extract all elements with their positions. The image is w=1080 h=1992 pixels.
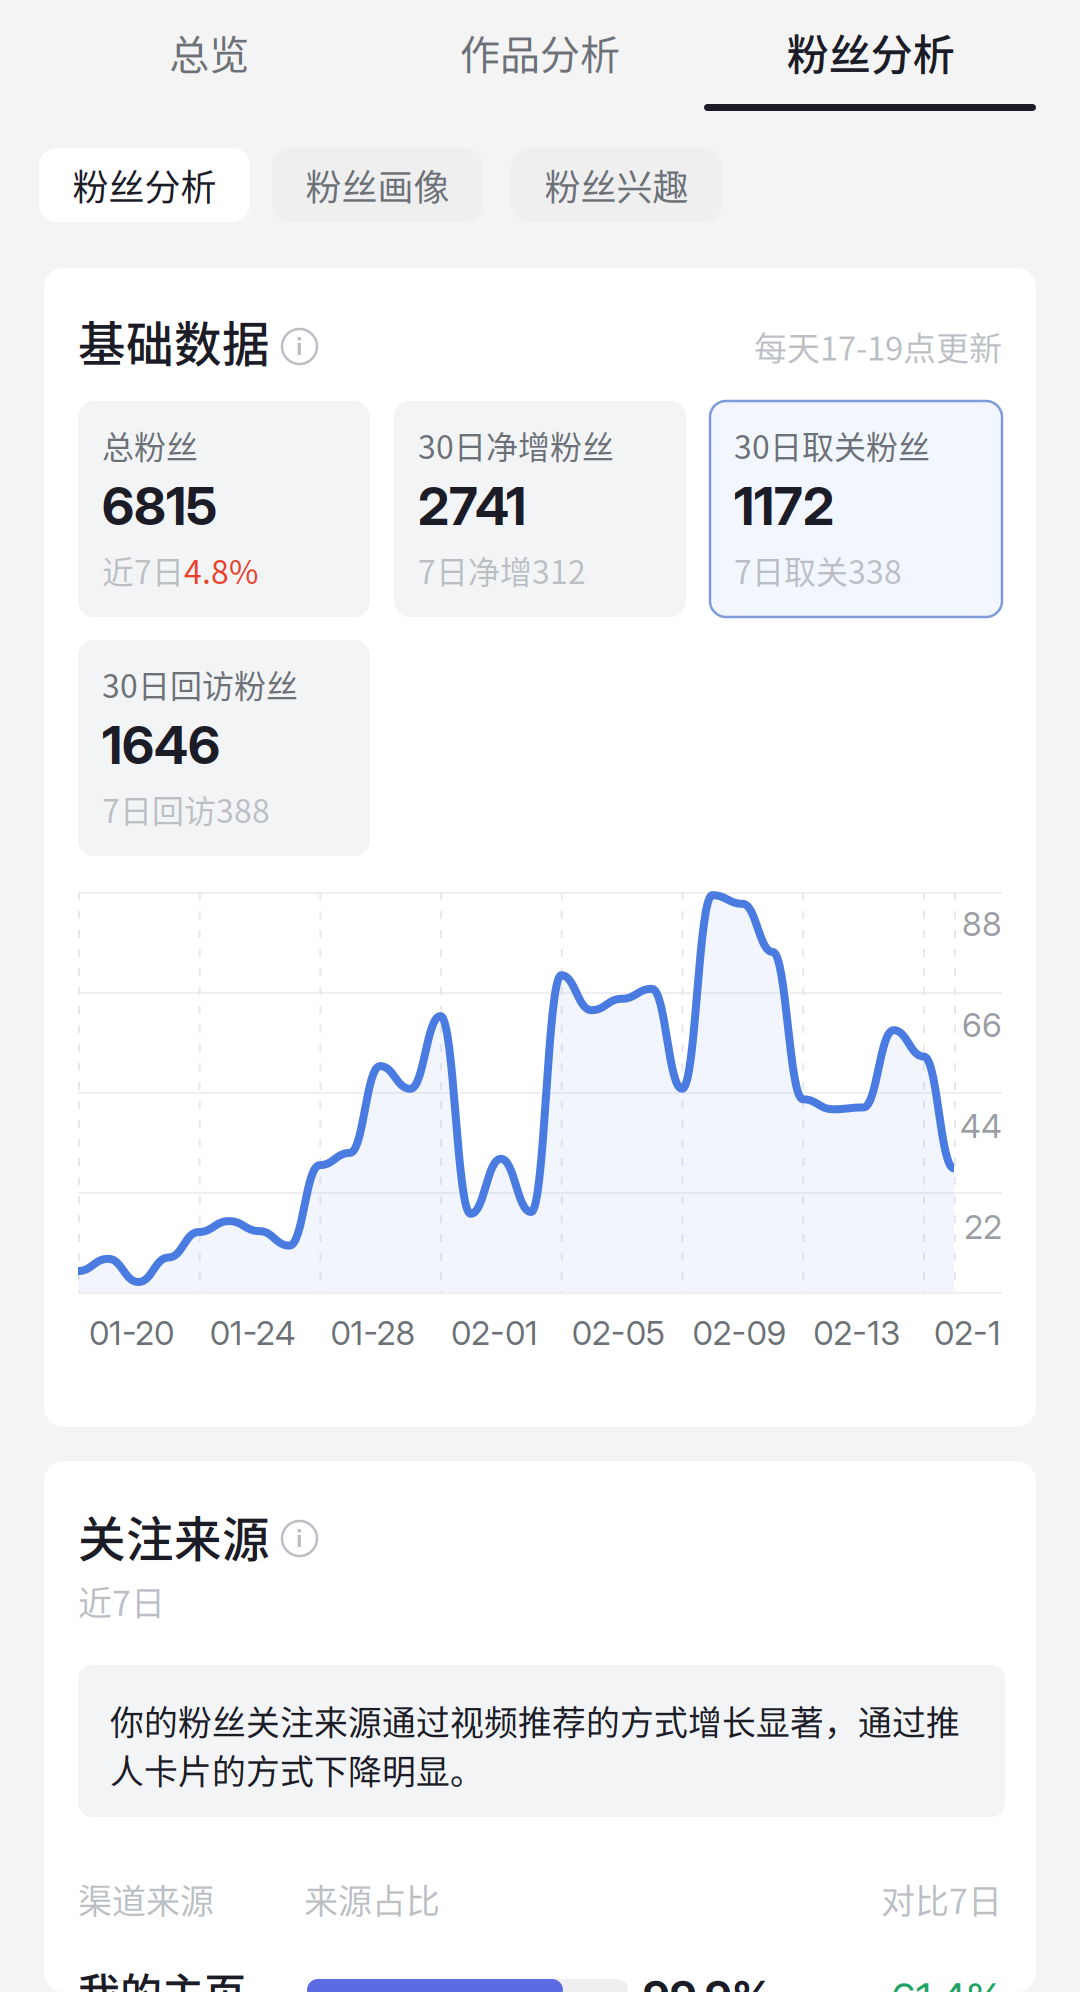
staticText: 对比7日 bbox=[881, 1874, 1002, 1924]
button[interactable]: 粉丝兴趣 bbox=[511, 148, 722, 222]
staticText: 66 bbox=[962, 1005, 1002, 1045]
staticText: 01-20 bbox=[89, 1313, 174, 1353]
staticText: 粉丝兴趣 bbox=[544, 159, 688, 211]
staticText: 02-09 bbox=[692, 1313, 786, 1353]
button[interactable]: 基础数据说明 bbox=[282, 329, 317, 364]
button[interactable]: 粉丝分析 bbox=[705, 0, 1036, 104]
staticText: 6815 bbox=[102, 474, 217, 537]
staticText: 粉丝画像 bbox=[305, 159, 449, 211]
staticText: 作品分析 bbox=[460, 23, 620, 81]
button[interactable]: 30日净增粉丝 bbox=[394, 401, 686, 617]
staticText: 22 bbox=[964, 1207, 1002, 1247]
staticText: 我的主页 bbox=[78, 1961, 246, 1992]
staticText: 7日取关 bbox=[734, 547, 848, 593]
button[interactable]: 粉丝分析 bbox=[39, 148, 250, 222]
staticText: 4.8% bbox=[184, 547, 258, 593]
staticText: 总粉丝 bbox=[102, 422, 198, 468]
staticText: 312 bbox=[532, 547, 586, 593]
staticText: 88 bbox=[962, 904, 1002, 944]
staticText: 30日取关粉丝 bbox=[734, 422, 930, 468]
staticText: 61.4% bbox=[891, 1973, 1002, 1992]
staticText: 44 bbox=[960, 1106, 1002, 1146]
staticText: 30日净增粉丝 bbox=[418, 422, 614, 468]
staticText: 基础数据 bbox=[78, 307, 270, 375]
button[interactable]: 总粉丝 bbox=[78, 401, 370, 617]
staticText: 你的粉丝关注来源通过视频推荐的方式增长显著，通过推人卡片的方式下降明显。 bbox=[110, 1696, 960, 1794]
staticText: 1172 bbox=[734, 474, 834, 537]
staticText: 粉丝分析 bbox=[787, 22, 955, 82]
staticText: 7日净增 bbox=[418, 547, 532, 593]
staticText: 7日回访 bbox=[102, 786, 216, 832]
staticText: 渠道来源 bbox=[78, 1874, 214, 1924]
button[interactable]: 关注来源说明 bbox=[282, 1521, 317, 1556]
button[interactable]: 总览 bbox=[44, 0, 375, 104]
staticText: 99.9% bbox=[643, 1970, 772, 1992]
button[interactable]: 作品分析 bbox=[375, 0, 705, 104]
staticText: 01-24 bbox=[210, 1313, 296, 1353]
staticText: 近7日 bbox=[102, 547, 184, 593]
staticText: 来源占比 bbox=[304, 1874, 440, 1924]
staticText: 02-1 bbox=[934, 1313, 1001, 1353]
staticText: 2741 bbox=[418, 474, 526, 537]
staticText: 关注来源 bbox=[78, 1502, 270, 1570]
staticText: 02-05 bbox=[572, 1313, 665, 1353]
staticText: 总览 bbox=[169, 23, 249, 81]
staticText: 388 bbox=[216, 786, 270, 832]
button[interactable]: 30日取关粉丝 bbox=[710, 401, 1002, 617]
staticText: 02-13 bbox=[813, 1313, 900, 1353]
staticText: 02-01 bbox=[451, 1313, 538, 1353]
staticText: 每天17-19点更新 bbox=[754, 322, 1002, 370]
staticText: 338 bbox=[848, 547, 902, 593]
staticText: 1646 bbox=[102, 713, 220, 776]
staticText: 粉丝分析 bbox=[72, 159, 216, 211]
staticText: 近7日 bbox=[78, 1576, 165, 1626]
staticText: 01-28 bbox=[330, 1313, 415, 1353]
button[interactable]: 粉丝画像 bbox=[272, 148, 483, 222]
staticText: 30日回访粉丝 bbox=[102, 661, 298, 707]
button[interactable]: 30日回访粉丝 bbox=[78, 640, 370, 856]
